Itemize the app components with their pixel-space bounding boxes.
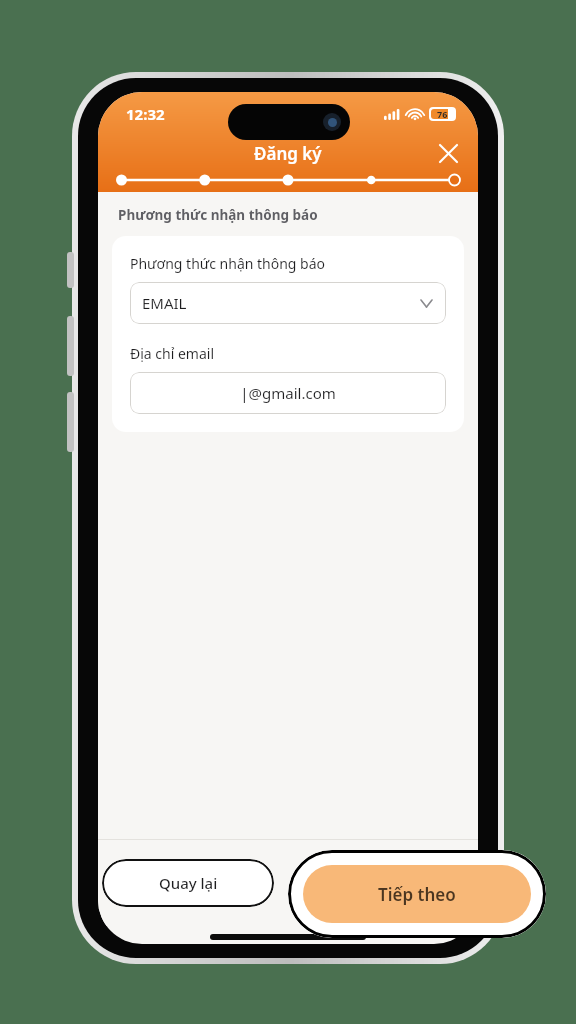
staticText: |@gmail.com [240,383,336,403]
staticText: Đăng ký [254,142,322,165]
staticText: Tiếp theo [378,883,456,906]
staticText: Phương thức nhận thông báo [130,254,326,273]
staticText: Quay lại [159,873,218,893]
staticText: EMAIL [142,293,187,313]
button[interactable]: Đóng [432,137,464,169]
button[interactable]: |@gmail.com [130,372,446,414]
staticText: Địa chỉ email [130,344,215,363]
button[interactable]: Quay lại [102,859,274,907]
staticText: 12:32 [126,104,165,124]
button[interactable]: EMAIL [130,282,446,324]
staticText: Phương thức nhận thông báo [118,206,318,224]
button[interactable]: Tiếp theo [288,850,546,938]
staticText: 76 [437,108,448,120]
button[interactable] [302,859,474,907]
